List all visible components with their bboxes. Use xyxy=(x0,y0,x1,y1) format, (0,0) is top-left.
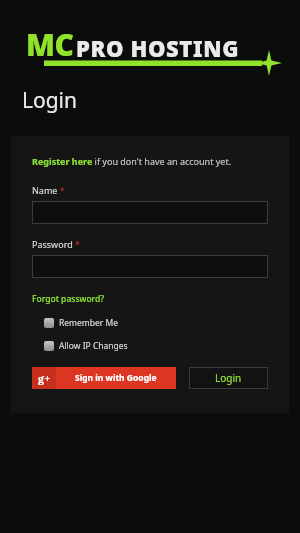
staticText: Login xyxy=(22,86,78,115)
staticText: Sign in with Google xyxy=(75,372,157,384)
staticText: Password * xyxy=(32,238,81,250)
button[interactable]: Login xyxy=(189,367,268,389)
staticText: Allow IP Changes xyxy=(59,340,128,352)
button[interactable]: Name input xyxy=(32,201,268,224)
staticText: Login xyxy=(215,371,242,385)
staticText: Name * xyxy=(32,184,65,196)
staticText: PRO HOSTING xyxy=(76,33,240,63)
button[interactable]: Password input xyxy=(32,255,268,278)
staticText: Remember Me xyxy=(59,317,119,329)
button[interactable]: g+ xyxy=(32,367,176,389)
staticText: MC xyxy=(26,24,74,65)
button[interactable]: Register here if you don't have an accou… xyxy=(32,155,232,167)
button[interactable]: Remember Me xyxy=(44,317,119,329)
staticText: g+ xyxy=(38,371,51,386)
button[interactable]: Forgot password? xyxy=(32,293,105,305)
button[interactable]: Allow IP Changes xyxy=(44,340,128,352)
